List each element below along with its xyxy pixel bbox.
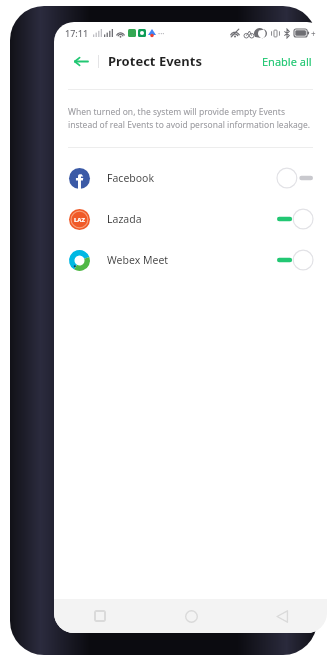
button[interactable]: On (277, 208, 313, 230)
button[interactable]: Back (265, 599, 299, 633)
staticText: Facebook (107, 171, 155, 185)
button[interactable]: Webex Meet (54, 239, 327, 280)
staticText: + (311, 28, 316, 39)
button[interactable]: Enable all (260, 50, 314, 73)
staticText: Protect Events (108, 52, 202, 70)
staticText: Enable all (262, 54, 312, 69)
button[interactable]: Home (174, 599, 208, 633)
button[interactable]: Back (67, 48, 93, 74)
staticText: Lazada (107, 212, 142, 226)
staticText: Webex Meet (107, 253, 169, 267)
button[interactable]: LAZ (54, 198, 327, 239)
button[interactable]: Recents (83, 599, 117, 633)
button[interactable]: Facebook (54, 157, 327, 198)
button[interactable]: On (277, 249, 313, 271)
staticText: ··· (158, 28, 165, 39)
staticText: When turned on, the system will provide … (68, 106, 313, 131)
button[interactable]: Off (277, 167, 313, 189)
staticText: 17:11 (65, 27, 89, 39)
staticText: LAZ (74, 216, 85, 224)
